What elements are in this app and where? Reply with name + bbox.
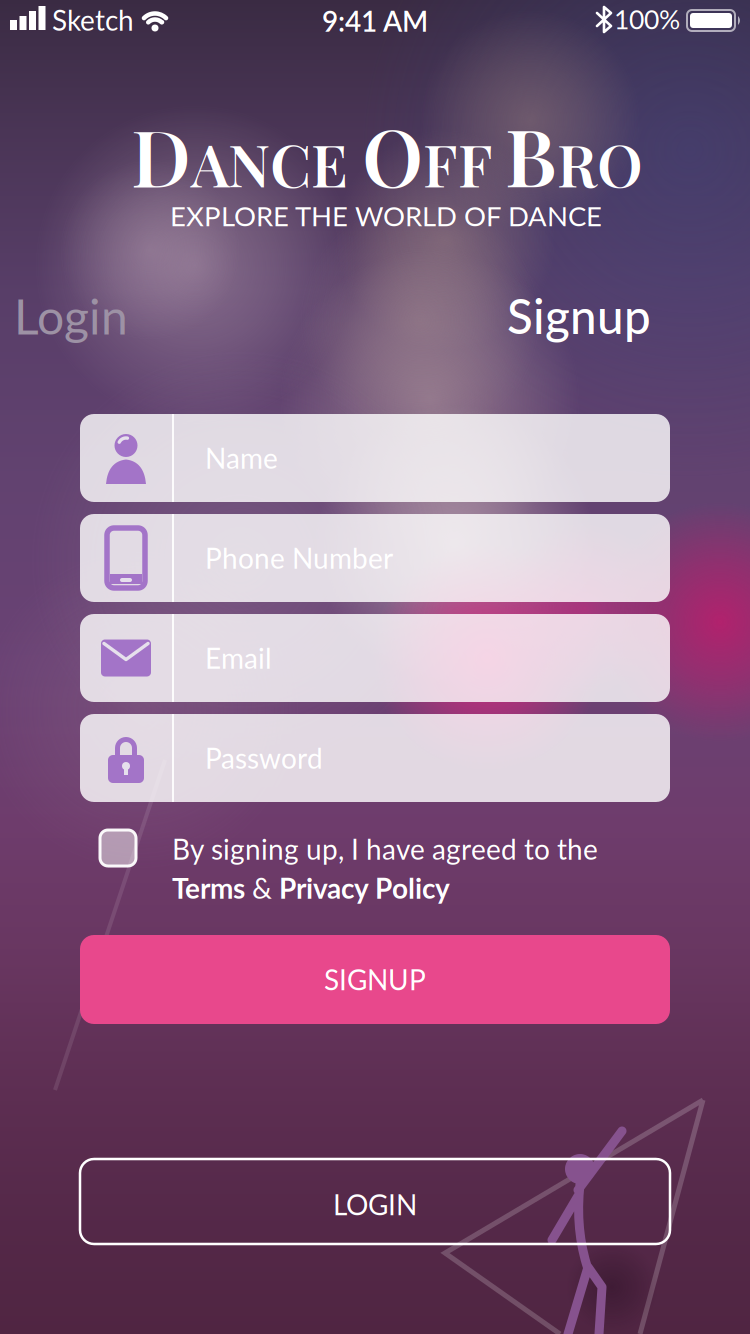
staticText: Password: [205, 741, 323, 775]
staticText: Phone Number: [205, 541, 393, 575]
staticText: &: [245, 871, 279, 905]
staticText: 100%: [614, 3, 680, 35]
button[interactable]: SIGNUP: [80, 935, 670, 1024]
staticText: Sketch: [52, 3, 134, 37]
staticText: EXPLORE THE WORLD OF DANCE: [170, 199, 602, 232]
button[interactable]: Agree to terms: [100, 830, 136, 866]
staticText: Login: [14, 287, 128, 345]
button[interactable]: Password: [80, 714, 670, 802]
button[interactable]: LOGIN: [80, 1159, 670, 1244]
button[interactable]: Name: [80, 414, 670, 502]
button[interactable]: Phone Number: [80, 514, 670, 602]
button[interactable]: Privacy Policy: [279, 871, 450, 905]
staticText: 9:41 AM: [322, 4, 428, 38]
button[interactable]: Login: [14, 287, 128, 345]
staticText: SIGNUP: [324, 963, 426, 996]
staticText: LOGIN: [333, 1188, 417, 1221]
button[interactable]: Email: [80, 614, 670, 702]
staticText: DANCE OFF BRO: [131, 103, 643, 206]
staticText: Name: [205, 441, 278, 475]
staticText: Signup: [507, 287, 651, 344]
staticText: Terms: [172, 871, 245, 905]
staticText: Privacy Policy: [279, 871, 450, 905]
button[interactable]: Terms: [172, 871, 245, 905]
staticText: Email: [205, 641, 272, 675]
staticText: By signing up, I have agreed to the: [172, 832, 598, 866]
button[interactable]: Signup: [507, 287, 651, 344]
